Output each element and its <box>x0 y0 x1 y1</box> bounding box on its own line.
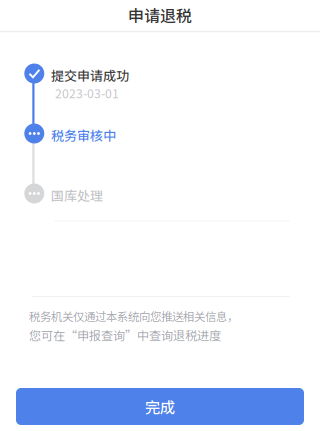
staticText: 税务审核中 <box>51 125 116 144</box>
staticText: 提交申请成功 <box>51 65 129 84</box>
button[interactable]: 完成 <box>16 388 304 425</box>
staticText: 您可在“申报查询”中查询退税进度 <box>29 326 221 344</box>
staticText: 税务机关仅通过本系统向您推送相关信息， <box>29 308 238 324</box>
staticText: 申请退税 <box>128 3 192 27</box>
staticText: 2023-03-01 <box>55 84 119 102</box>
staticText: 国库处理 <box>51 185 103 204</box>
staticText: 完成 <box>145 395 175 418</box>
